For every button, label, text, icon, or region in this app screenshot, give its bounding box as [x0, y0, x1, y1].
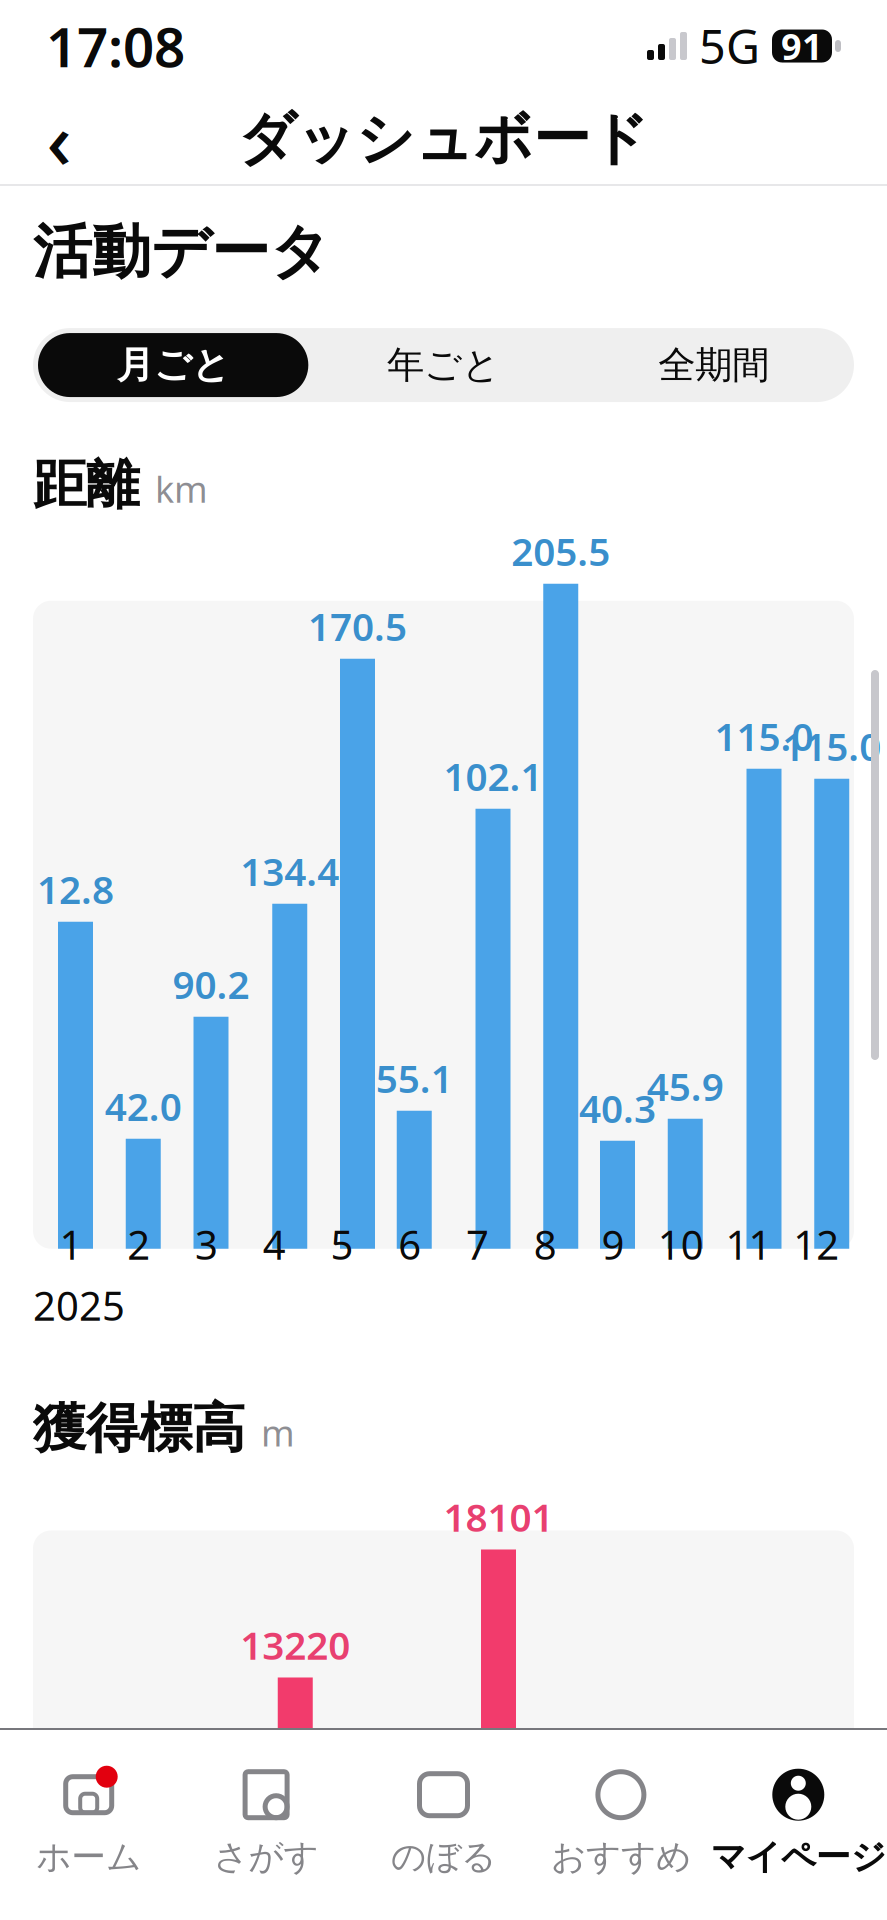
staticText: 1 [59, 1218, 82, 1271]
staticText: 10 [658, 1218, 704, 1271]
staticText: 91 [781, 22, 823, 70]
staticText: 6 [398, 1218, 421, 1271]
staticText: 55.1 [376, 1052, 453, 1104]
staticText: 40.3 [579, 1082, 656, 1134]
button[interactable]: おすすめ [532, 1746, 710, 1902]
button[interactable]: のぼる [355, 1746, 532, 1902]
staticText: 12.8 [37, 863, 114, 915]
staticText: 5G [699, 15, 760, 77]
button[interactable]: 年ごと [308, 333, 579, 397]
staticText: 45.9 [647, 1060, 724, 1112]
staticText: さがす [214, 1836, 319, 1878]
staticText: 42.0 [105, 1080, 182, 1132]
staticText: 年ごと [387, 342, 500, 388]
staticText: 115.0 [714, 710, 813, 762]
staticText: のぼる [391, 1836, 496, 1878]
staticText: 月ごと [117, 342, 230, 388]
staticText: 8 [534, 1218, 557, 1271]
staticText: ‹ [46, 88, 71, 190]
staticText: 2 [127, 1218, 150, 1271]
staticText: 18101 [443, 1491, 553, 1542]
staticText: 115.0 [782, 720, 881, 772]
staticText: 活動データ [33, 216, 330, 288]
staticText: km [155, 465, 208, 513]
staticText: 11721 [172, 1747, 282, 1798]
button[interactable]: ホーム [0, 1746, 177, 1902]
staticText: 12 [793, 1218, 839, 1271]
button[interactable]: 月ごと [38, 333, 308, 397]
staticText: 134.4 [240, 845, 339, 897]
button[interactable]: 全期間 [579, 333, 849, 397]
staticText: マイページ [711, 1836, 886, 1878]
staticText: 170.5 [308, 600, 407, 652]
button[interactable]: マイページ [710, 1746, 887, 1902]
staticText: 2025 [33, 1279, 125, 1332]
staticText: 9 [601, 1218, 624, 1271]
staticText: 距離 [33, 452, 139, 518]
staticText: 102.1 [443, 750, 542, 802]
staticText: 4 [263, 1218, 286, 1271]
staticText: ホーム [36, 1836, 141, 1878]
button[interactable]: 戻る [22, 102, 96, 176]
staticText: 7 [466, 1218, 489, 1271]
staticText: 11 [725, 1218, 771, 1271]
staticText: 獲得標高 [33, 1396, 245, 1461]
staticText: 205.5 [511, 525, 610, 577]
staticText: 13220 [240, 1619, 350, 1670]
staticText: 17:08 [46, 10, 185, 82]
staticText: おすすめ [551, 1836, 691, 1878]
staticText: 全期間 [658, 342, 769, 388]
button[interactable]: さがす [177, 1746, 355, 1902]
staticText: m [261, 1408, 295, 1456]
staticText: 5 [330, 1218, 353, 1271]
staticText: ダッシュボード [238, 104, 649, 174]
staticText: 90.2 [172, 958, 249, 1010]
staticText: 3 [195, 1218, 218, 1271]
